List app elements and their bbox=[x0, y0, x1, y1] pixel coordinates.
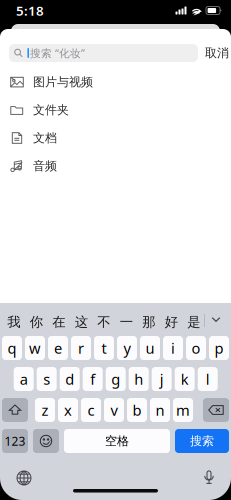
staticText: 你 bbox=[30, 314, 43, 330]
staticText: j bbox=[160, 369, 164, 389]
button[interactable]: u bbox=[140, 336, 160, 360]
staticText: t bbox=[101, 338, 106, 358]
staticText: n bbox=[155, 400, 164, 420]
button[interactable]: 音频 bbox=[0, 152, 231, 180]
button[interactable]: z bbox=[35, 398, 55, 422]
staticText: i bbox=[171, 338, 175, 358]
button[interactable]: q bbox=[2, 336, 22, 360]
staticText: w bbox=[29, 338, 41, 358]
button[interactable]: Shift bbox=[2, 398, 28, 422]
button[interactable]: 不 bbox=[93, 300, 115, 338]
button[interactable]: j bbox=[152, 367, 172, 391]
button[interactable]: 是 bbox=[183, 300, 205, 338]
button[interactable]: b bbox=[127, 398, 147, 422]
staticText: 图片与视频 bbox=[33, 75, 93, 89]
button[interactable]: d bbox=[60, 367, 80, 391]
button[interactable]: 图片与视频 bbox=[0, 68, 231, 96]
button[interactable]: l bbox=[198, 367, 218, 391]
button[interactable]: Next keyboard bbox=[9, 465, 39, 491]
button[interactable]: p bbox=[209, 336, 229, 360]
staticText: 我 bbox=[7, 314, 20, 330]
staticText: a bbox=[20, 369, 28, 389]
staticText: 是 bbox=[187, 314, 200, 330]
button[interactable]: Delete bbox=[203, 398, 229, 422]
button[interactable]: 123 bbox=[2, 429, 28, 453]
button[interactable]: 好 bbox=[160, 300, 183, 338]
staticText: 音频 bbox=[33, 159, 57, 173]
staticText: x bbox=[64, 400, 72, 420]
staticText: u bbox=[145, 338, 154, 358]
staticText: 5:18 bbox=[16, 2, 44, 19]
button[interactable]: g bbox=[106, 367, 126, 391]
button[interactable]: 那 bbox=[138, 300, 160, 338]
staticText: d bbox=[65, 369, 74, 389]
button[interactable]: 在 bbox=[48, 300, 70, 338]
button[interactable]: 你 bbox=[25, 300, 48, 338]
button[interactable]: 搜索 bbox=[175, 429, 229, 453]
staticText: c bbox=[87, 400, 94, 420]
staticText: q bbox=[7, 338, 16, 358]
staticText: 空格 bbox=[105, 434, 129, 448]
button[interactable]: 我 bbox=[3, 300, 25, 338]
staticText: e bbox=[54, 338, 62, 358]
button[interactable]: h bbox=[129, 367, 149, 391]
staticText: m bbox=[176, 400, 190, 420]
staticText: r bbox=[78, 338, 84, 358]
button[interactable]: 这 bbox=[70, 300, 93, 338]
button[interactable]: o bbox=[186, 336, 206, 360]
button[interactable]: More candidates bbox=[203, 303, 229, 336]
staticText: z bbox=[41, 400, 48, 420]
staticText: 123 bbox=[4, 433, 25, 449]
button[interactable]: 一 bbox=[115, 300, 138, 338]
staticText: 搜索 “化妆” bbox=[30, 46, 85, 60]
staticText: 一 bbox=[120, 314, 133, 330]
staticText: s bbox=[43, 369, 50, 389]
staticText: 那 bbox=[142, 314, 155, 330]
button[interactable]: 取消 bbox=[200, 44, 231, 62]
button[interactable]: 文档 bbox=[0, 124, 231, 152]
button[interactable]: Dictate bbox=[194, 465, 224, 491]
staticText: y bbox=[123, 338, 130, 358]
staticText: 不 bbox=[97, 314, 110, 330]
staticText: 在 bbox=[52, 314, 65, 330]
staticText: h bbox=[134, 369, 143, 389]
button[interactable]: e bbox=[48, 336, 68, 360]
button[interactable]: c bbox=[81, 398, 101, 422]
staticText: o bbox=[191, 338, 200, 358]
staticText: l bbox=[206, 369, 210, 389]
button[interactable]: i bbox=[163, 336, 183, 360]
staticText: p bbox=[214, 338, 223, 358]
staticText: 搜索 bbox=[190, 434, 214, 448]
button[interactable]: Emoji bbox=[33, 429, 59, 453]
button[interactable]: a bbox=[14, 367, 34, 391]
staticText: 好 bbox=[165, 314, 178, 330]
button[interactable]: 空格 bbox=[64, 429, 170, 453]
staticText: g bbox=[111, 369, 120, 389]
staticText: v bbox=[110, 400, 117, 420]
staticText: b bbox=[132, 400, 141, 420]
staticText: k bbox=[181, 369, 189, 389]
button[interactable]: 搜索 “化妆” bbox=[9, 44, 198, 62]
staticText: 取消 bbox=[205, 46, 229, 60]
button[interactable]: y bbox=[117, 336, 137, 360]
button[interactable]: x bbox=[58, 398, 78, 422]
button[interactable]: 文件夹 bbox=[0, 96, 231, 124]
button[interactable]: w bbox=[25, 336, 45, 360]
button[interactable]: s bbox=[37, 367, 57, 391]
staticText: 这 bbox=[75, 314, 88, 330]
button[interactable]: r bbox=[71, 336, 91, 360]
button[interactable]: n bbox=[150, 398, 170, 422]
button[interactable]: k bbox=[175, 367, 195, 391]
button[interactable]: t bbox=[94, 336, 114, 360]
staticText: 文档 bbox=[33, 131, 57, 145]
button[interactable]: f bbox=[83, 367, 103, 391]
staticText: f bbox=[90, 369, 95, 389]
button[interactable]: m bbox=[173, 398, 193, 422]
button[interactable]: v bbox=[104, 398, 124, 422]
staticText: 文件夹 bbox=[33, 103, 69, 117]
